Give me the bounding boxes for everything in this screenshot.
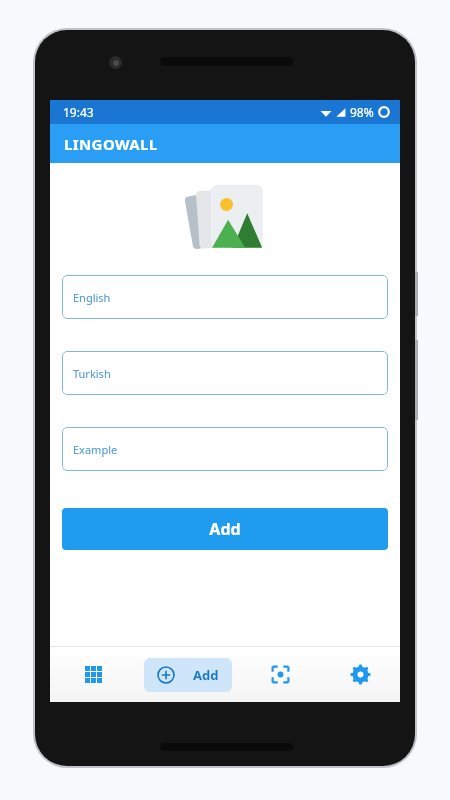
button[interactable]: Turkish	[62, 351, 388, 395]
staticText: 19:43	[63, 104, 94, 120]
button[interactable]: Add	[62, 508, 388, 550]
button[interactable]: Settings	[320, 647, 400, 702]
staticText: Turkish	[73, 366, 111, 381]
button[interactable]: Words grid	[50, 647, 136, 702]
button[interactable]: Add	[144, 658, 232, 692]
staticText: LINGOWALL	[64, 134, 158, 154]
button[interactable]: Scan	[240, 647, 320, 702]
staticText: Example	[73, 442, 118, 457]
staticText: Add	[193, 666, 219, 684]
staticText: English	[73, 290, 111, 305]
staticText: 98%	[350, 104, 374, 120]
staticText: Add	[209, 518, 241, 540]
button[interactable]: Example	[62, 427, 388, 471]
button[interactable]: English	[62, 275, 388, 319]
